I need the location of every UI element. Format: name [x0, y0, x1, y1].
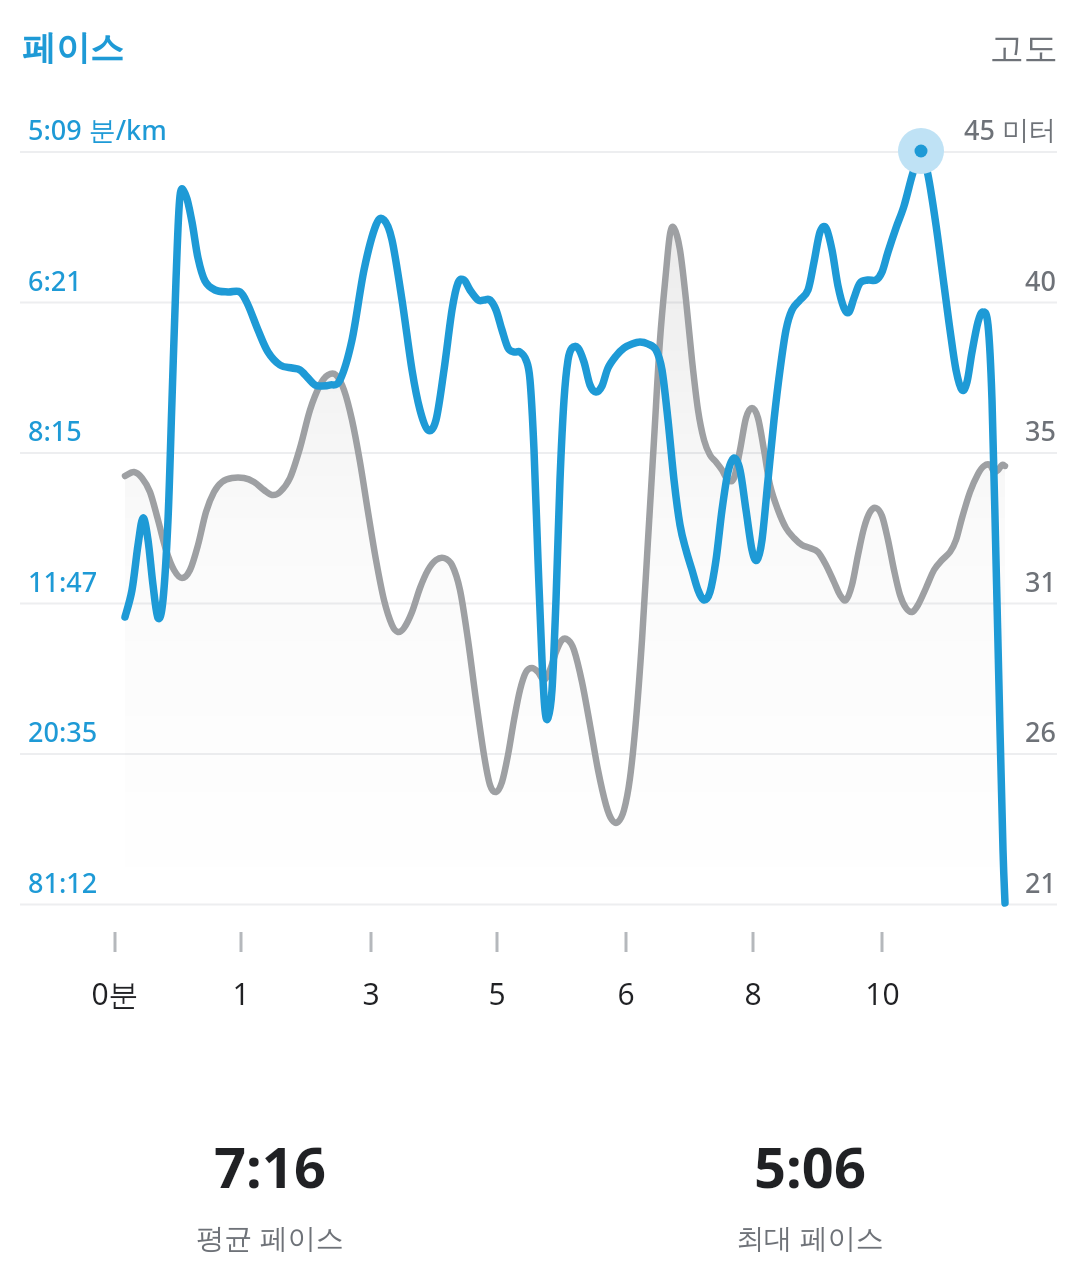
staticText: 8:15: [28, 412, 82, 449]
staticText: 0분: [91, 973, 139, 1014]
staticText: 21: [1025, 864, 1056, 901]
staticText: 20:35: [28, 713, 98, 750]
staticText: 5: [488, 973, 506, 1014]
staticText: 6: [617, 973, 635, 1014]
staticText: 35: [1025, 412, 1056, 449]
staticText: 5:06: [754, 1128, 866, 1204]
staticText: 1: [232, 973, 250, 1014]
staticText: 7:16: [214, 1128, 326, 1204]
staticText: 45 미터: [964, 111, 1056, 148]
staticText: 31: [1025, 563, 1056, 600]
button[interactable]: 5:06: [540, 1124, 1080, 1260]
button[interactable]: 7:16: [0, 1124, 540, 1260]
button[interactable]: 페이스: [22, 27, 124, 70]
staticText: 3: [362, 973, 380, 1014]
staticText: 최대 페이스: [736, 1218, 884, 1256]
staticText: 고도: [990, 27, 1058, 70]
staticText: 6:21: [28, 262, 82, 299]
staticText: 11:47: [28, 563, 98, 600]
staticText: 26: [1025, 713, 1056, 750]
staticText: 8: [744, 973, 762, 1014]
staticText: 5:09 분/km: [28, 111, 167, 148]
button[interactable]: 고도: [990, 27, 1058, 70]
staticText: 10: [865, 973, 900, 1014]
staticText: 페이스: [22, 27, 124, 70]
staticText: 평균 페이스: [196, 1218, 344, 1256]
staticText: 81:12: [28, 864, 98, 901]
staticText: 40: [1025, 262, 1056, 299]
